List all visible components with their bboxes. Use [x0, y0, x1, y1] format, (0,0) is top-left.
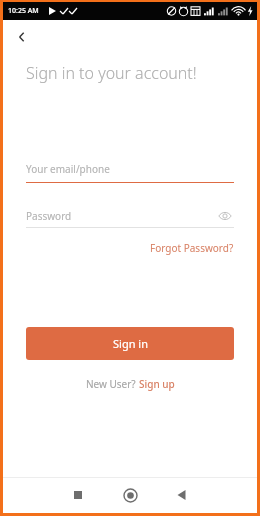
staticText: Your email/phone [26, 162, 110, 176]
button[interactable]: Sign up [139, 377, 175, 391]
staticText: 10:25 AM [8, 6, 39, 16]
button[interactable]: Home [113, 478, 147, 512]
button[interactable]: Password [26, 207, 234, 228]
staticText: Password [26, 209, 216, 223]
staticText: Sign up [139, 377, 175, 391]
button[interactable]: Sign in [26, 327, 234, 360]
button[interactable]: Back [165, 478, 199, 512]
button[interactable]: Forgot Password? [150, 241, 234, 255]
button[interactable]: Back [9, 24, 35, 50]
button[interactable]: Your email/phone [26, 162, 234, 183]
button[interactable]: Recent apps [61, 478, 95, 512]
staticText: Sign in [113, 336, 148, 351]
button[interactable]: Show password [216, 207, 234, 225]
staticText: Forgot Password? [150, 241, 234, 255]
staticText: New User? [86, 377, 139, 391]
staticText: Sign in to your account! [26, 62, 197, 84]
